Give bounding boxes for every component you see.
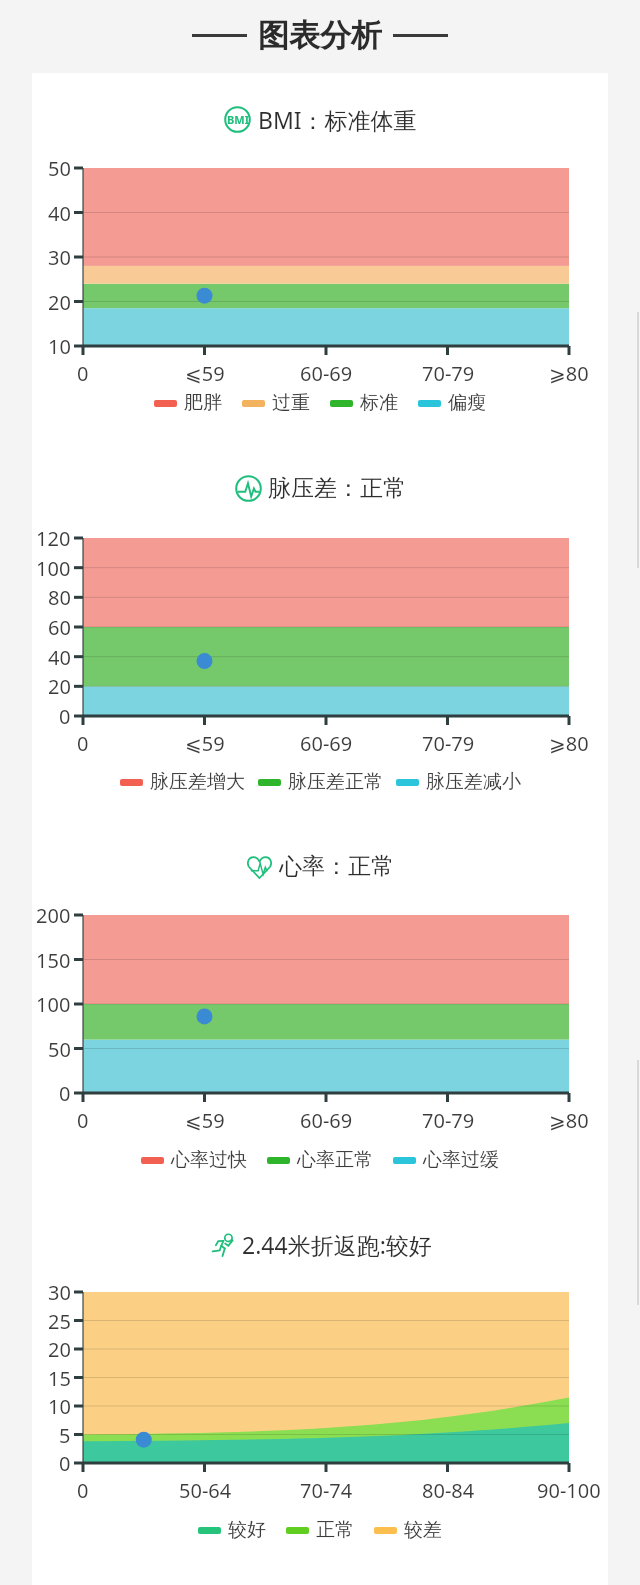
button[interactable]: 折返跑: [209, 1229, 432, 1260]
staticText: 偏瘦: [448, 391, 486, 415]
staticText: 20: [48, 673, 71, 699]
button[interactable]: 脉压差：正常: [83, 538, 569, 716]
staticText: 0: [59, 703, 71, 729]
staticText: BMI: [227, 112, 249, 127]
staticText: 120: [36, 525, 71, 551]
staticText: 心率正常: [297, 1148, 373, 1172]
staticText: ⩾80: [549, 730, 589, 757]
staticText: 30: [48, 1279, 71, 1305]
other: 脉压差: [235, 475, 262, 502]
staticText: 90-100: [537, 1477, 601, 1504]
staticText: ⩽59: [185, 360, 225, 387]
staticText: 2.44米折返跑:较好: [242, 1229, 432, 1260]
staticText: 20: [48, 1336, 71, 1362]
staticText: ⩾80: [549, 360, 589, 387]
staticText: 50-64: [179, 1477, 232, 1504]
staticText: 40: [48, 200, 71, 226]
button[interactable]: BMI: [224, 104, 417, 135]
staticText: 20: [48, 289, 71, 315]
staticText: 0: [77, 1477, 89, 1504]
staticText: 肥胖: [184, 391, 222, 415]
staticText: 脉压差正常: [288, 770, 383, 794]
staticText: 100: [36, 991, 71, 1017]
staticText: 10: [48, 1393, 71, 1419]
staticText: 200: [36, 902, 71, 928]
staticText: 50: [48, 1036, 71, 1062]
staticText: 15: [48, 1365, 71, 1391]
staticText: 脉压差增大: [150, 770, 245, 794]
staticText: 70-79: [422, 1107, 475, 1134]
staticText: 心率过缓: [423, 1148, 499, 1172]
button[interactable]: 心率: [246, 852, 394, 881]
staticText: 50: [48, 155, 71, 181]
staticText: 心率：正常: [279, 852, 394, 881]
staticText: 心率过快: [171, 1148, 247, 1172]
button[interactable]: 脉压差: [235, 474, 406, 503]
staticText: 70-74: [300, 1477, 353, 1504]
staticText: 60: [48, 614, 71, 640]
staticText: 10: [48, 333, 71, 359]
staticText: 0: [77, 360, 89, 387]
staticText: 40: [48, 644, 71, 670]
staticText: 较好: [228, 1518, 266, 1542]
staticText: 30: [48, 244, 71, 270]
other: 折返跑: [209, 1231, 236, 1258]
staticText: 0: [59, 1450, 71, 1476]
staticText: 图表分析: [258, 16, 382, 55]
staticText: 70-79: [422, 730, 475, 757]
staticText: ⩾80: [549, 1107, 589, 1134]
staticText: 正常: [316, 1518, 354, 1542]
staticText: 80-84: [422, 1477, 475, 1504]
staticText: 60-69: [300, 1107, 353, 1134]
staticText: 5: [59, 1422, 71, 1448]
staticText: 25: [48, 1308, 71, 1334]
staticText: ⩽59: [185, 730, 225, 757]
staticText: 脉压差减小: [426, 770, 521, 794]
button[interactable]: BMI：标准体重: [83, 168, 569, 346]
staticText: 150: [36, 947, 71, 973]
staticText: 0: [59, 1080, 71, 1106]
staticText: ⩽59: [185, 1107, 225, 1134]
staticText: 脉压差：正常: [268, 474, 406, 503]
staticText: 70-79: [422, 360, 475, 387]
staticText: 0: [77, 1107, 89, 1134]
staticText: 60-69: [300, 730, 353, 757]
button[interactable]: 2.44米折返跑:较好: [83, 1292, 569, 1463]
other: BMI: [224, 106, 251, 133]
staticText: 60-69: [300, 360, 353, 387]
staticText: 较差: [404, 1518, 442, 1542]
staticText: 标准: [360, 391, 398, 415]
button[interactable]: 心率：正常: [83, 915, 569, 1093]
staticText: 过重: [272, 391, 310, 415]
staticText: 80: [48, 584, 71, 610]
staticText: 100: [36, 555, 71, 581]
staticText: 0: [77, 730, 89, 757]
other: 心率: [246, 853, 273, 880]
staticText: BMI：标准体重: [258, 104, 417, 135]
